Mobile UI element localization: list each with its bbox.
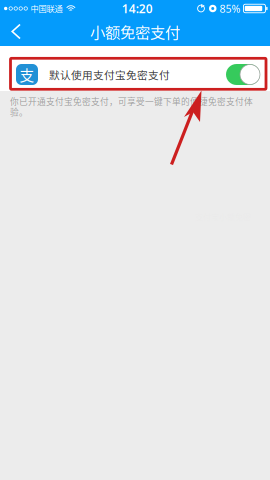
staticText: 14:20 bbox=[122, 0, 153, 16]
staticText: 小额免密支付 bbox=[90, 20, 180, 43]
staticText: 85% bbox=[219, 1, 240, 16]
staticText: 默认使用支付宝免密支付 bbox=[49, 67, 170, 82]
staticText: 你已开通支付宝免密支付，可享受一键下单的便捷免密支付体验。 bbox=[10, 95, 253, 118]
button[interactable]: 支 bbox=[0, 46, 270, 91]
staticText: 中国联通 bbox=[30, 2, 62, 14]
staticText: 支 bbox=[19, 64, 34, 85]
button[interactable]: 返回 bbox=[0, 17, 33, 45]
